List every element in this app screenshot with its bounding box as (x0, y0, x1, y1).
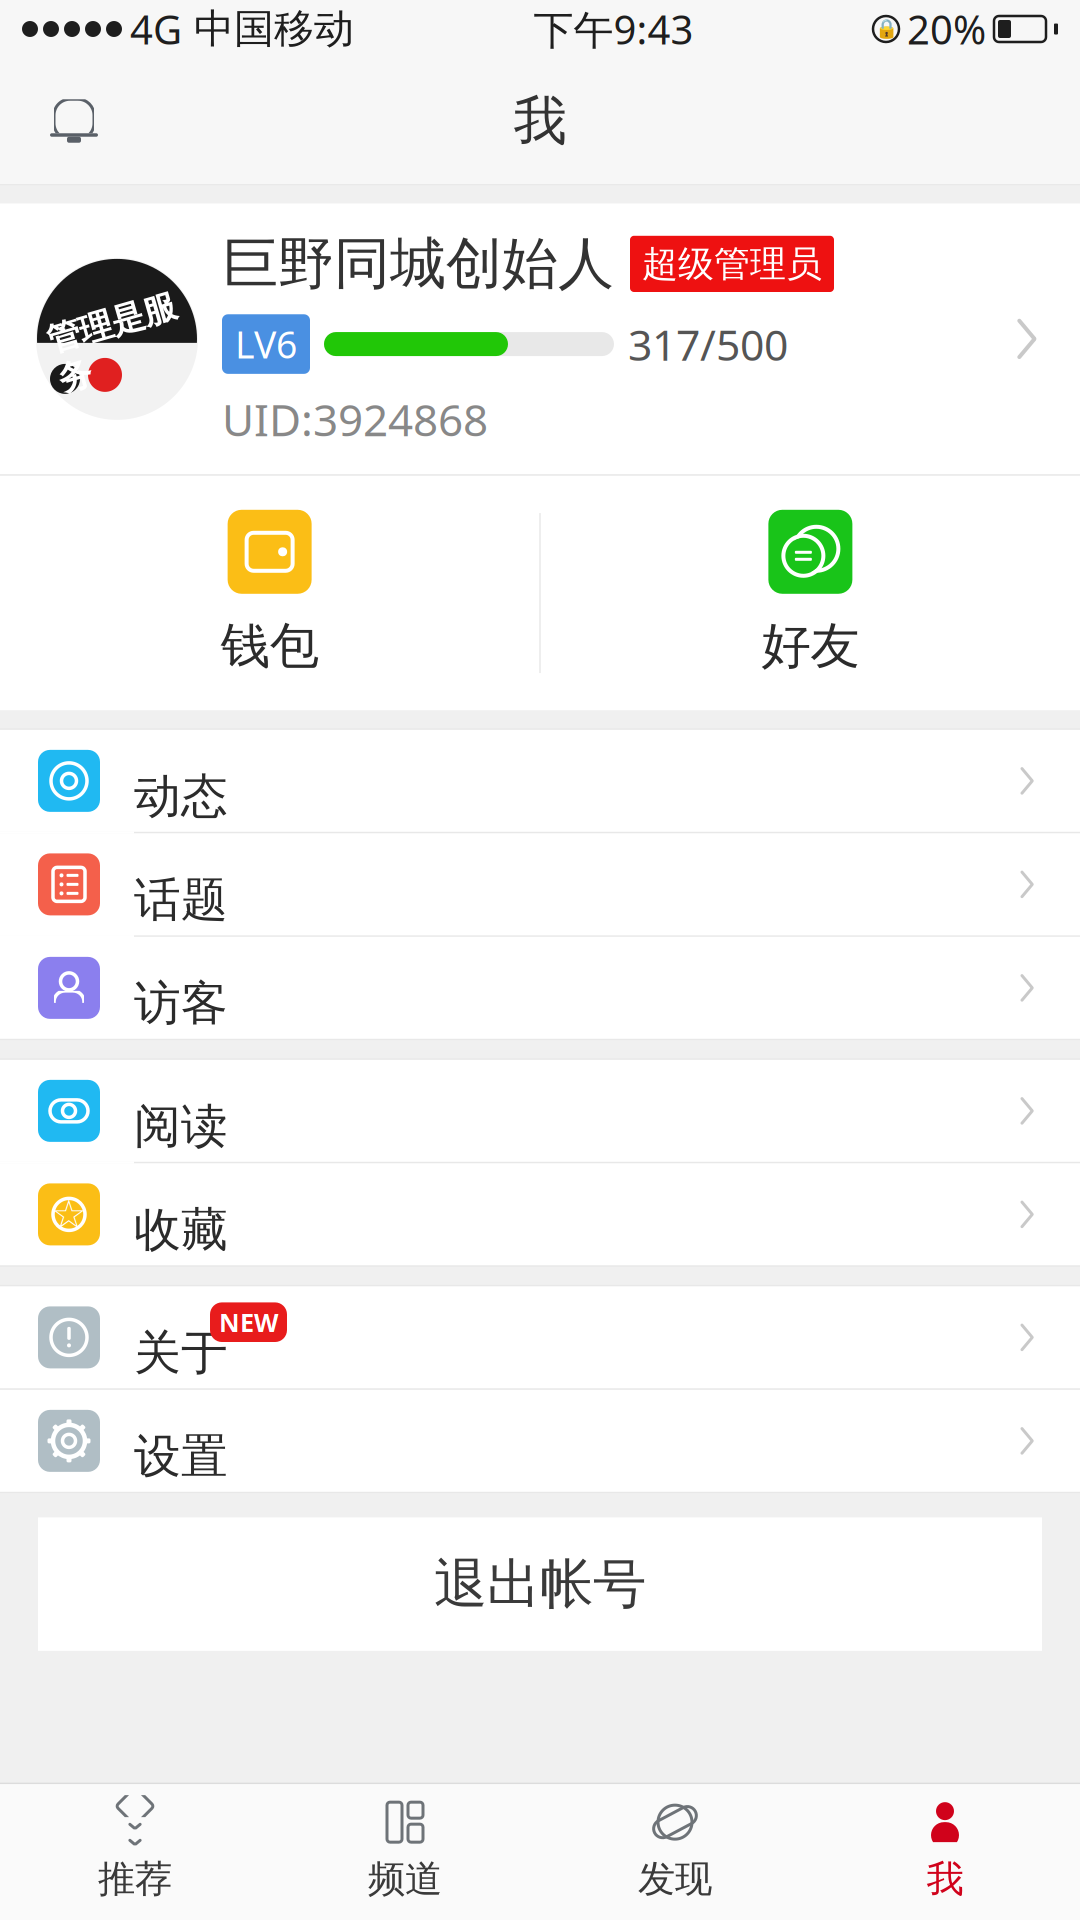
button[interactable]: 访客 (0, 937, 1080, 1039)
button[interactable]: 通知 (28, 75, 120, 167)
button[interactable]: 我 (810, 1784, 1080, 1920)
staticText: LV6 (235, 319, 297, 369)
staticText: 话题 (134, 871, 228, 929)
staticText: 317/500 (628, 316, 788, 372)
button[interactable]: 阅读 (0, 1060, 1080, 1163)
staticText: 动态 (134, 768, 228, 825)
staticText: 关于 (134, 1324, 228, 1382)
staticText: 我 (926, 1856, 963, 1902)
staticText: NEW (219, 1305, 278, 1339)
button[interactable]: 钱包 (0, 476, 539, 710)
button[interactable]: 频道 (270, 1784, 540, 1920)
staticText: 管理是服务 (51, 302, 183, 384)
staticText: 访客 (134, 975, 228, 1032)
button[interactable]: 动态 (0, 730, 1080, 833)
button[interactable]: 管理是服务 (0, 203, 1080, 474)
button[interactable]: 关于 (0, 1286, 1080, 1388)
button[interactable]: 话题 (0, 833, 1080, 937)
staticText: 退出帐号 (434, 1551, 646, 1617)
staticText: 设置 (134, 1428, 228, 1485)
staticText: 我 (513, 88, 566, 154)
button[interactable]: 退出帐号 (0, 1517, 1080, 1651)
staticText: 🔒 (874, 18, 897, 40)
button[interactable]: 推荐 (0, 1784, 270, 1920)
staticText: 20% (907, 2, 986, 55)
staticText: 钱包 (221, 616, 319, 676)
button[interactable]: 设置 (0, 1390, 1080, 1492)
staticText: 频道 (368, 1856, 442, 1902)
button[interactable]: ★ (0, 1163, 1080, 1265)
button[interactable]: 好友 (541, 476, 1080, 710)
staticText: 推荐 (98, 1856, 172, 1902)
staticText: 收藏 (134, 1201, 228, 1259)
staticText: 4G (130, 2, 182, 55)
button[interactable]: 发现 (540, 1784, 810, 1920)
staticText: ☆ (51, 1192, 87, 1237)
staticText: ★ (53, 1195, 84, 1234)
staticText: 发现 (638, 1856, 712, 1902)
staticText: 中国移动 (194, 4, 354, 53)
staticText: 阅读 (134, 1098, 228, 1155)
staticText: 下午9:43 (533, 2, 693, 55)
staticText: 超级管理员 (642, 242, 822, 286)
staticText: 巨野同城创始人 (222, 229, 614, 298)
staticText: 好友 (761, 616, 859, 676)
staticText: UID:3924868 (222, 390, 488, 448)
